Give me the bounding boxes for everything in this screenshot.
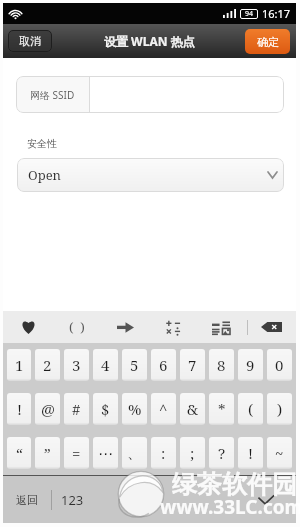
staticText: ; bbox=[190, 443, 195, 463]
staticText: ) bbox=[277, 399, 283, 419]
button[interactable]: $ bbox=[93, 393, 118, 425]
button[interactable]: 1 bbox=[7, 349, 31, 381]
button[interactable]: 6 bbox=[151, 349, 176, 381]
staticText: 5 bbox=[130, 355, 139, 375]
staticText: 8 bbox=[217, 355, 226, 375]
staticText: 0 bbox=[275, 355, 284, 375]
staticText: www.33LC.com bbox=[160, 494, 300, 520]
button[interactable]: 0 bbox=[267, 349, 292, 381]
staticText: 确定 bbox=[257, 35, 279, 49]
button[interactable]: ( ) bbox=[65, 313, 89, 341]
staticText: Open bbox=[28, 166, 61, 184]
button[interactable]: 确定 bbox=[245, 29, 290, 54]
button[interactable]: Symbol list bbox=[209, 313, 233, 341]
staticText: 6 bbox=[159, 355, 168, 375]
button[interactable]: Emoji bbox=[16, 313, 40, 341]
staticText: ? bbox=[218, 443, 226, 463]
staticText: @ bbox=[41, 399, 55, 419]
button[interactable]: Math symbols bbox=[161, 313, 185, 341]
button[interactable]: Enter bbox=[236, 476, 296, 523]
staticText: 返回 bbox=[16, 493, 38, 507]
button[interactable]: Insert arrow bbox=[113, 313, 137, 341]
button[interactable]: ; bbox=[180, 437, 205, 469]
staticText: 绿茶软件园 bbox=[172, 469, 297, 500]
staticText: = bbox=[72, 443, 81, 463]
button[interactable]: 3 bbox=[64, 349, 89, 381]
staticText: 94 bbox=[245, 9, 254, 19]
button[interactable]: “ bbox=[7, 437, 31, 469]
staticText: 16:17 bbox=[262, 6, 291, 21]
staticText: 2 bbox=[43, 355, 52, 375]
staticText: 9 bbox=[246, 355, 255, 375]
button[interactable]: 4 bbox=[93, 349, 118, 381]
button[interactable]: 网络 SSID bbox=[16, 76, 284, 113]
staticText: & bbox=[187, 399, 199, 419]
button[interactable]: # bbox=[64, 393, 89, 425]
staticText: ^ bbox=[159, 399, 168, 419]
staticText: 3 bbox=[72, 355, 81, 375]
button[interactable]: ⋯ bbox=[93, 437, 118, 469]
staticText: 安全性 bbox=[27, 137, 57, 150]
staticText: 123 bbox=[61, 491, 84, 509]
button[interactable]: 、 bbox=[122, 437, 147, 469]
staticText: ~ bbox=[275, 443, 284, 463]
staticText: % bbox=[128, 399, 142, 419]
button[interactable]: ! bbox=[7, 393, 31, 425]
button[interactable]: ? bbox=[209, 437, 234, 469]
button[interactable]: 2 bbox=[35, 349, 60, 381]
staticText: “ bbox=[16, 443, 23, 463]
button[interactable]: ( bbox=[238, 393, 263, 425]
staticText: ⋯ bbox=[98, 445, 113, 462]
button[interactable]: & bbox=[180, 393, 205, 425]
staticText: * bbox=[218, 399, 226, 419]
staticText: 4 bbox=[101, 355, 110, 375]
staticText: $ bbox=[101, 399, 110, 419]
button[interactable]: Backspace bbox=[261, 322, 282, 332]
button[interactable]: 7 bbox=[180, 349, 205, 381]
button[interactable]: 5 bbox=[122, 349, 147, 381]
staticText: 、 bbox=[127, 444, 142, 463]
staticText: 1 bbox=[15, 355, 24, 375]
button[interactable]: ^ bbox=[151, 393, 176, 425]
button[interactable]: 取消 bbox=[8, 30, 52, 52]
staticText: 网络 SSID bbox=[30, 88, 75, 102]
staticText: ( ) bbox=[69, 318, 85, 336]
button[interactable]: 返回 bbox=[3, 476, 51, 523]
button[interactable]: ! bbox=[238, 437, 263, 469]
button[interactable]: % bbox=[122, 393, 147, 425]
staticText: ” bbox=[44, 443, 51, 463]
button[interactable]: = bbox=[64, 437, 89, 469]
button[interactable]: 123 bbox=[52, 476, 93, 523]
staticText: ! bbox=[17, 399, 22, 419]
button[interactable]: Open bbox=[17, 158, 284, 192]
button[interactable]: 8 bbox=[209, 349, 234, 381]
button[interactable]: * bbox=[209, 393, 234, 425]
staticText: ! bbox=[248, 443, 253, 463]
button[interactable]: : bbox=[151, 437, 176, 469]
staticText: 7 bbox=[188, 355, 197, 375]
staticText: 设置 WLAN 热点 bbox=[104, 33, 195, 49]
staticText: : bbox=[161, 443, 166, 463]
button[interactable]: ” bbox=[35, 437, 60, 469]
staticText: 取消 bbox=[19, 34, 41, 48]
button[interactable]: 9 bbox=[238, 349, 263, 381]
button[interactable]: @ bbox=[35, 393, 60, 425]
button[interactable]: ~ bbox=[267, 437, 292, 469]
staticText: # bbox=[72, 399, 81, 419]
staticText: ( bbox=[248, 399, 254, 419]
button[interactable]: ) bbox=[267, 393, 292, 425]
